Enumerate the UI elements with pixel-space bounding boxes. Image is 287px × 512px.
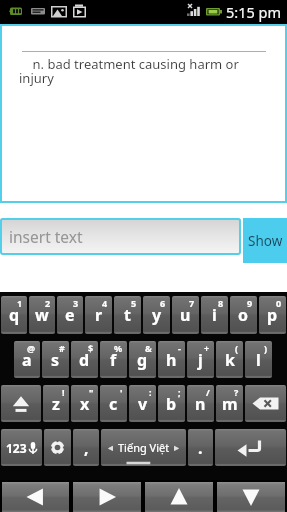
staticText: ; bbox=[178, 386, 181, 398]
button[interactable]: r bbox=[85, 296, 112, 334]
staticText: l bbox=[256, 349, 261, 371]
staticText: - bbox=[178, 342, 181, 354]
staticText: . bbox=[198, 437, 203, 459]
staticText: x bbox=[80, 393, 90, 415]
staticText: j bbox=[198, 349, 203, 371]
button[interactable]: j bbox=[187, 341, 214, 378]
button[interactable]: Show bbox=[243, 218, 287, 263]
button[interactable]: i bbox=[201, 296, 228, 334]
staticText: , bbox=[84, 437, 89, 459]
button[interactable]: Up bbox=[145, 482, 213, 512]
button[interactable]: h bbox=[158, 341, 185, 378]
button[interactable]: y bbox=[143, 296, 170, 334]
staticText: ' bbox=[120, 386, 123, 398]
button[interactable]: Enter bbox=[215, 429, 286, 466]
staticText: f bbox=[110, 349, 117, 371]
staticText: 6 bbox=[160, 297, 166, 309]
staticText: v bbox=[138, 393, 148, 415]
staticText: e bbox=[65, 304, 75, 326]
staticText: 9 bbox=[247, 297, 253, 309]
button[interactable]: ◂ bbox=[101, 429, 186, 466]
staticText: w bbox=[35, 304, 49, 326]
staticText: + bbox=[204, 342, 210, 354]
staticText: d bbox=[79, 349, 90, 371]
button[interactable]: Shift bbox=[1, 385, 41, 422]
staticText: k bbox=[225, 349, 235, 371]
button[interactable]: v bbox=[129, 385, 156, 422]
staticText: 0 bbox=[276, 297, 282, 309]
button[interactable]: k bbox=[216, 341, 243, 378]
staticText: $ bbox=[88, 342, 94, 354]
staticText: 4 bbox=[102, 297, 108, 309]
staticText: ? bbox=[234, 386, 239, 398]
button[interactable]: q bbox=[1, 296, 27, 334]
staticText: @ bbox=[27, 342, 36, 354]
staticText: ! bbox=[62, 386, 65, 398]
staticText: y bbox=[152, 304, 162, 326]
button[interactable]: n bbox=[187, 385, 214, 422]
button[interactable]: insert text bbox=[0, 218, 241, 255]
staticText: t bbox=[124, 304, 131, 326]
staticText: Show bbox=[248, 232, 283, 250]
staticText: i bbox=[212, 304, 217, 326]
staticText: b bbox=[166, 393, 177, 415]
button[interactable]: a bbox=[14, 341, 40, 378]
staticText: m bbox=[222, 393, 238, 415]
button[interactable]: t bbox=[114, 296, 141, 334]
staticText: 1 bbox=[17, 297, 23, 309]
staticText: Tiếng Việt bbox=[118, 440, 170, 455]
staticText: 8 bbox=[218, 297, 224, 309]
staticText: h bbox=[166, 349, 177, 371]
staticText: z bbox=[52, 393, 60, 415]
button[interactable]: m bbox=[216, 385, 243, 422]
button[interactable]: b bbox=[158, 385, 185, 422]
staticText: o bbox=[238, 304, 249, 326]
button[interactable]: u bbox=[172, 296, 199, 334]
staticText: ▸ bbox=[174, 442, 180, 454]
staticText: 2 bbox=[45, 297, 51, 309]
staticText: 3 bbox=[73, 297, 79, 309]
staticText: 7 bbox=[189, 297, 195, 309]
button[interactable]: Right bbox=[73, 482, 141, 512]
button[interactable]: w bbox=[29, 296, 55, 334]
staticText: ◂ bbox=[108, 442, 114, 454]
button[interactable]: c bbox=[100, 385, 127, 422]
staticText: g bbox=[137, 349, 148, 371]
staticText: a bbox=[22, 349, 32, 371]
staticText: q bbox=[9, 304, 20, 326]
button[interactable]: f bbox=[100, 341, 127, 378]
button[interactable]: Down bbox=[217, 482, 285, 512]
button[interactable]: x bbox=[71, 385, 98, 422]
staticText: r bbox=[95, 304, 103, 326]
button[interactable]: 123 bbox=[1, 429, 42, 466]
button[interactable]: z bbox=[43, 385, 69, 422]
button[interactable]: , bbox=[73, 429, 99, 466]
staticText: & bbox=[145, 342, 152, 354]
button[interactable]: l bbox=[245, 341, 272, 378]
button[interactable]: e bbox=[57, 296, 83, 334]
staticText: c bbox=[109, 393, 118, 415]
staticText: 5 bbox=[131, 297, 137, 309]
staticText: # bbox=[59, 342, 65, 354]
staticText: ) bbox=[264, 342, 268, 354]
staticText: insert text bbox=[9, 226, 83, 247]
staticText: u bbox=[180, 304, 191, 326]
staticText: s bbox=[51, 349, 60, 371]
staticText: 5:15 pm bbox=[226, 2, 282, 22]
button[interactable]: Left bbox=[2, 482, 69, 512]
button[interactable]: p bbox=[259, 296, 286, 334]
staticText: n bbox=[195, 393, 206, 415]
staticText: p bbox=[267, 304, 278, 326]
button[interactable]: . bbox=[188, 429, 213, 466]
staticText: ( bbox=[235, 342, 239, 354]
button[interactable]: Settings bbox=[44, 429, 71, 466]
staticText: " bbox=[89, 386, 94, 398]
button[interactable]: g bbox=[129, 341, 156, 378]
staticText: n. bad treatment causing harm or injury bbox=[19, 55, 241, 86]
button[interactable]: s bbox=[42, 341, 69, 378]
button[interactable]: o bbox=[230, 296, 257, 334]
staticText: 123 bbox=[6, 440, 27, 456]
staticText: % bbox=[114, 342, 123, 354]
button[interactable]: d bbox=[71, 341, 98, 378]
button[interactable]: Delete bbox=[245, 385, 286, 422]
